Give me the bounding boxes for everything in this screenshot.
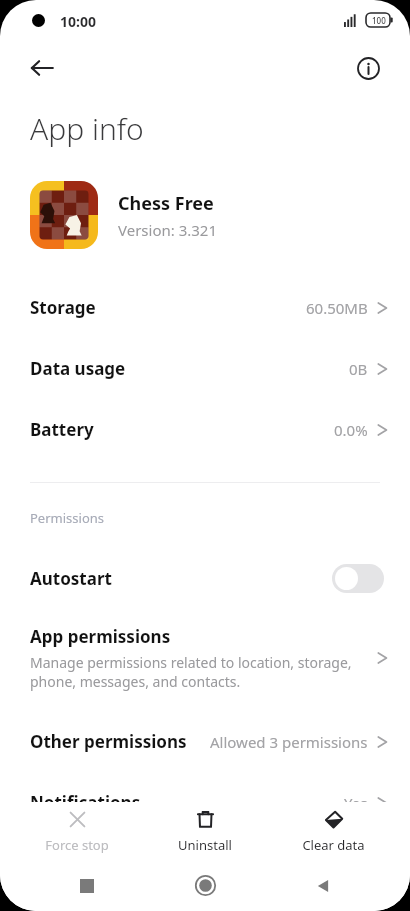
button[interactable]: Autostart bbox=[0, 551, 410, 605]
staticText: Clear data bbox=[302, 836, 365, 854]
staticText: Yes bbox=[344, 793, 368, 813]
staticText: Data usage bbox=[30, 357, 126, 380]
button[interactable]: Clear data bbox=[283, 806, 383, 856]
button[interactable]: Force stop bbox=[27, 806, 127, 856]
button[interactable]: Back bbox=[281, 860, 365, 911]
staticText: 0B bbox=[349, 359, 368, 379]
button[interactable]: Uninstall bbox=[155, 806, 255, 856]
staticText: Notifications bbox=[30, 791, 141, 814]
staticText: 100 bbox=[372, 15, 386, 26]
staticText: Allowed 3 permissions bbox=[210, 732, 368, 752]
staticText: App permissions bbox=[30, 625, 171, 648]
staticText: Storage bbox=[30, 296, 96, 319]
button[interactable]: Storage bbox=[0, 277, 410, 338]
staticText: Permissions bbox=[30, 509, 105, 527]
button[interactable]: Notifications bbox=[0, 772, 410, 833]
button[interactable]: Recents bbox=[45, 860, 129, 911]
staticText: Autostart bbox=[30, 567, 112, 590]
staticText: Version: 3.321 bbox=[118, 220, 218, 240]
staticText: Uninstall bbox=[178, 836, 232, 854]
staticText: Chess Free bbox=[118, 191, 214, 216]
button[interactable]: Home bbox=[163, 860, 247, 911]
staticText: 60.50MB bbox=[306, 298, 368, 318]
staticText: Manage permissions related to location, … bbox=[30, 653, 352, 691]
button[interactable]: Back bbox=[18, 44, 66, 92]
staticText: Force stop bbox=[45, 836, 109, 854]
staticText: App info bbox=[30, 108, 144, 149]
staticText: Other permissions bbox=[30, 730, 187, 753]
button[interactable]: App permissions bbox=[0, 619, 410, 697]
button[interactable]: App details bbox=[344, 44, 392, 92]
button[interactable]: Battery bbox=[0, 399, 410, 460]
staticText: 0.0% bbox=[334, 420, 368, 440]
button[interactable]: Data usage bbox=[0, 338, 410, 399]
staticText: 10:00 bbox=[60, 12, 96, 31]
staticText: Battery bbox=[30, 418, 94, 441]
button[interactable]: Other permissions bbox=[0, 711, 410, 772]
